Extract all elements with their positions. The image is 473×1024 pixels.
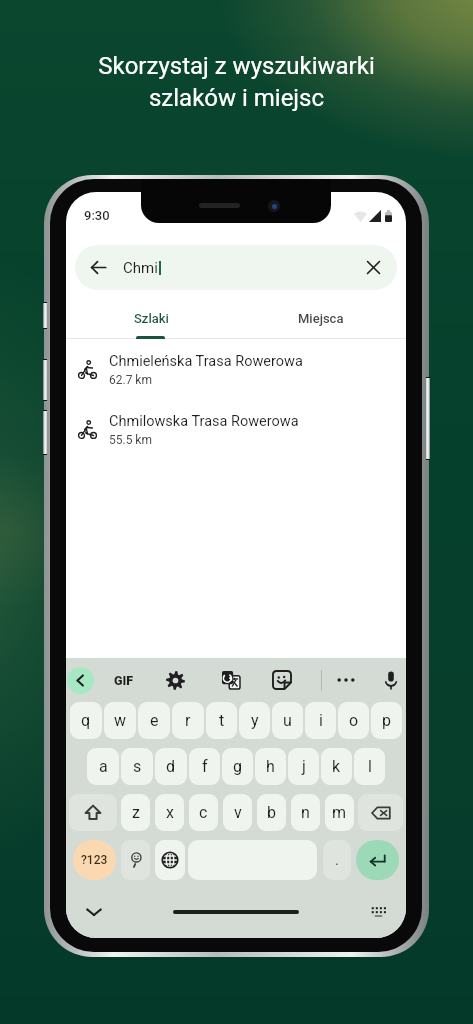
button[interactable]: Stickers	[269, 667, 295, 693]
staticText: Miejsca	[298, 311, 344, 326]
button[interactable]: Emoji	[121, 840, 150, 880]
button[interactable]: o	[338, 702, 369, 739]
staticText: e	[150, 711, 159, 730]
staticText: ?123	[81, 853, 108, 867]
staticText: a	[99, 757, 108, 776]
staticText: n	[301, 803, 310, 822]
button[interactable]: z	[121, 794, 150, 831]
button[interactable]: t	[206, 702, 237, 739]
button[interactable]: Space	[188, 840, 317, 880]
button[interactable]: Settings	[162, 667, 188, 693]
staticText: Skorzystaj z wyszukiwarki szlaków i miej…	[98, 52, 375, 112]
staticText: .	[335, 851, 339, 869]
button[interactable]: m	[325, 794, 354, 831]
button[interactable]: Language	[155, 840, 185, 880]
staticText: s	[133, 757, 142, 776]
button[interactable]: Enter	[356, 840, 399, 880]
button[interactable]: j	[288, 748, 319, 785]
staticText: c	[199, 803, 208, 822]
button[interactable]: ?123	[73, 840, 116, 880]
button[interactable]: g	[222, 748, 253, 785]
staticText: h	[266, 757, 275, 776]
button[interactable]: k	[321, 748, 352, 785]
staticText: Chmieleńska Trasa Rowerowa	[109, 353, 303, 370]
staticText: v	[234, 803, 242, 822]
button[interactable]: a	[87, 748, 119, 785]
button[interactable]: f	[189, 748, 220, 785]
staticText: d	[166, 757, 176, 776]
staticText: t	[219, 711, 225, 730]
staticText: x	[166, 803, 174, 822]
staticText: Szlaki	[134, 311, 169, 326]
button[interactable]: w	[104, 702, 136, 739]
staticText: 62.7 km	[109, 373, 152, 387]
button[interactable]: Voice input	[378, 667, 404, 693]
staticText: f	[202, 757, 208, 776]
staticText: l	[368, 757, 372, 776]
staticText: w	[114, 711, 127, 730]
staticText: r	[185, 711, 191, 730]
button[interactable]: Miejsca	[236, 290, 406, 339]
button[interactable]: d	[155, 748, 187, 785]
staticText: i	[319, 711, 323, 730]
staticText: j	[302, 757, 306, 776]
staticText: q	[81, 711, 91, 730]
staticText: k	[332, 757, 341, 776]
staticText: m	[332, 803, 347, 822]
staticText: p	[382, 711, 391, 730]
button[interactable]: r	[172, 702, 204, 739]
staticText: GIF	[114, 673, 134, 688]
button[interactable]: n	[291, 794, 320, 831]
staticText: z	[132, 803, 140, 822]
button[interactable]: h	[255, 748, 286, 785]
button[interactable]: More options	[333, 667, 359, 693]
button[interactable]: Chmieleńska Trasa Rowerowa	[66, 339, 406, 399]
button[interactable]: i	[305, 702, 336, 739]
button[interactable]: Back	[75, 245, 397, 290]
button[interactable]: .	[323, 840, 351, 880]
button[interactable]: b	[257, 794, 286, 831]
button[interactable]: y	[239, 702, 270, 739]
staticText: y	[251, 711, 259, 730]
button[interactable]: GIF	[111, 667, 137, 693]
button[interactable]: Back	[67, 667, 94, 694]
button[interactable]: l	[354, 748, 385, 785]
staticText: u	[283, 711, 292, 730]
button[interactable]: Switch keyboard	[371, 906, 386, 918]
staticText: o	[349, 711, 359, 730]
button[interactable]: Szlaki	[66, 290, 236, 339]
button[interactable]: v	[223, 794, 252, 831]
staticText: Chmi	[123, 259, 158, 277]
button[interactable]: Chmilowska Trasa Rowerowa	[66, 399, 406, 459]
button[interactable]: Translate	[218, 667, 244, 693]
staticText: 55.5 km	[109, 433, 152, 447]
other: Back	[89, 258, 108, 277]
button[interactable]: p	[371, 702, 402, 739]
staticText: Chmilowska Trasa Rowerowa	[109, 413, 299, 430]
button[interactable]: s	[121, 748, 153, 785]
button[interactable]: u	[272, 702, 303, 739]
staticText: g	[233, 757, 242, 776]
button[interactable]: c	[189, 794, 218, 831]
button[interactable]: Hide keyboard	[86, 907, 102, 917]
other: Clear	[366, 260, 381, 275]
button[interactable]: Shift	[69, 794, 117, 831]
button[interactable]: x	[155, 794, 184, 831]
staticText: b	[267, 803, 276, 822]
staticText: 9:30	[84, 208, 110, 223]
button[interactable]: e	[138, 702, 170, 739]
button[interactable]: q	[70, 702, 102, 739]
button[interactable]: Backspace	[358, 794, 403, 831]
